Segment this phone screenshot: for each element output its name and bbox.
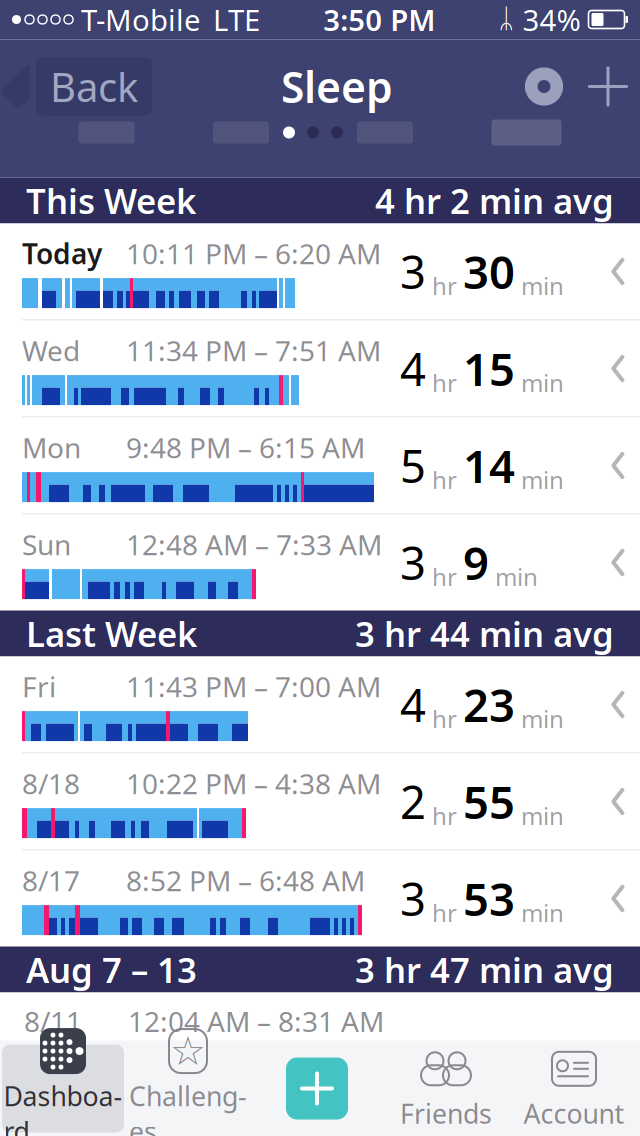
staticText: This Week [26,177,196,223]
button[interactable]: Wed [0,320,640,417]
button[interactable]: Today [0,223,640,320]
staticText: 3 [400,532,426,593]
staticText: 2 [400,771,426,832]
staticText: Aug 7 – 13 [26,946,197,992]
staticText: Dashboard [3,1078,122,1136]
button[interactable]: Fri [0,656,640,753]
staticText: Wed [22,332,80,369]
staticText: 3 [400,241,426,302]
staticText: 11:43 PM – 7:00 AM [126,668,381,705]
staticText: Last Week [26,610,197,656]
staticText: 8/17 [22,862,80,899]
button[interactable]: Sun [0,514,640,610]
staticText: 12:48 AM – 7:33 AM [126,526,382,563]
staticText: 4 [400,674,426,735]
button[interactable]: Back [10,57,152,115]
staticText: 53 [463,868,515,929]
staticText: 11:34 PM – 7:51 AM [126,332,381,369]
staticText: 8/18 [22,765,80,802]
staticText: min [489,561,538,593]
button[interactable]: Dashboard [2,1044,124,1132]
button[interactable]: Account [510,1044,638,1132]
staticText: 8:52 PM – 6:48 AM [126,862,365,899]
button[interactable]: 8/17 [0,850,640,946]
staticText: 12:04 AM – 8:31 AM [128,1002,384,1040]
staticText: 3 hr 44 min avg [355,610,614,656]
button[interactable]: 8/18 [0,753,640,850]
staticText: Friends [400,1096,492,1131]
staticText: hr [426,897,463,929]
staticText: 15 [463,338,515,399]
button[interactable]: Friends [382,1044,510,1132]
staticText: hr [426,464,463,496]
staticText: 14 [463,435,515,496]
staticText: 9 [463,532,489,593]
staticText: Today [22,235,102,272]
staticText: 9:48 PM – 6:15 AM [126,429,365,466]
staticText: hr [426,561,463,593]
button[interactable]: Settings [522,64,566,108]
staticText: Mon [22,429,81,466]
staticText: min [515,703,564,735]
staticText: Fri [22,668,56,705]
staticText: LTE [213,0,260,39]
staticText: min [515,897,564,929]
staticText: hr [426,800,463,832]
staticText: 23 [463,674,515,735]
staticText: 5 [400,435,426,496]
staticText: Back [50,60,138,113]
staticText: hr [426,270,463,302]
button[interactable]: ☆ [124,1044,252,1132]
staticText: ᛦ [498,6,514,32]
staticText: 8/11 [24,1002,82,1040]
staticText: 3 [400,868,426,929]
staticText: min [515,270,564,302]
staticText: 34% [522,0,580,39]
staticText: Sun [22,526,71,563]
staticText: 30 [463,241,515,302]
staticText: Sleep [281,58,393,115]
staticText: 3:50 PM [323,0,435,39]
staticText: 4 [400,338,426,399]
staticText: min [515,800,564,832]
staticText: 3 hr 47 min avg [355,946,614,992]
button[interactable]: Add [586,64,630,108]
staticText: T-Mobile [81,0,201,39]
staticText: ☆ [170,1028,206,1074]
staticText: Account [523,1096,624,1131]
staticText: 4 hr 2 min avg [375,177,614,223]
button[interactable]: Mon [0,417,640,514]
staticText: 10:11 PM – 6:20 AM [126,235,381,272]
staticText: 10:22 PM – 4:38 AM [126,765,381,802]
staticText: min [515,464,564,496]
staticText: 55 [463,771,515,832]
staticText: hr [426,703,463,735]
staticText: Challenges [129,1078,247,1136]
staticText: hr [426,367,463,399]
button[interactable]: Log [252,1044,382,1132]
staticText: min [515,367,564,399]
